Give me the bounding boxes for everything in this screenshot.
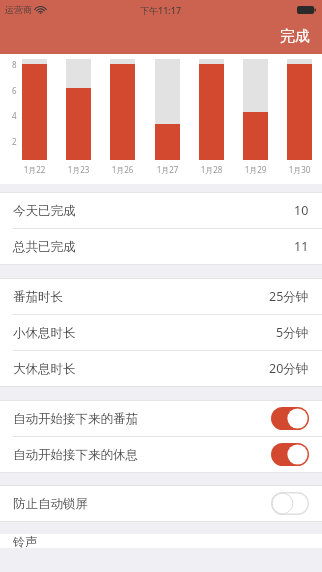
button[interactable]: 大休息时长 [0,351,322,386]
staticText: 防止自动锁屏 [13,496,88,512]
button[interactable]: 总共已完成 [0,229,322,264]
staticText: 4 [12,110,17,121]
staticText: 自动开始接下来的休息 [13,447,138,463]
staticText: 1月28日 [199,164,224,175]
button[interactable]: 防止自动锁屏 [0,486,322,521]
staticText: 总共已完成 [13,239,76,255]
staticText: 完成 [280,27,310,46]
staticText: 8 [12,59,17,70]
staticText: 20分钟 [269,360,309,377]
staticText: 1月26日 [110,164,135,175]
button[interactable]: 完成 [268,22,322,51]
staticText: 1月22日 [22,164,47,175]
staticText: 2 [12,136,17,147]
staticText: 铃声 [13,534,37,548]
button[interactable]: Switch on [271,407,309,430]
staticText: 25分钟 [269,288,309,305]
button[interactable]: 自动开始接下来的番茄 [0,401,322,436]
staticText: 运营商 [5,4,32,15]
staticText: 今天已完成 [13,203,76,219]
button[interactable]: 今天已完成 [0,193,322,228]
button[interactable]: 自动开始接下来的休息 [0,437,322,472]
staticText: 1月29日 [243,164,268,175]
staticText: 5分钟 [276,324,309,341]
staticText: 下午11:17 [140,4,182,16]
button[interactable]: Switch on [271,443,309,466]
staticText: 大休息时长 [13,361,76,377]
button[interactable]: 番茄时长 [0,279,322,314]
staticText: 6 [12,85,17,96]
staticText: 小休息时长 [13,325,76,341]
staticText: 番茄时长 [13,289,63,305]
staticText: 1月27日 [155,164,180,175]
staticText: 1月30日 [287,164,312,175]
staticText: 10 [294,202,309,219]
button[interactable]: 铃声 [0,534,322,548]
staticText: 11 [294,238,309,255]
button[interactable]: Switch off [271,492,309,515]
staticText: 自动开始接下来的番茄 [13,411,138,427]
staticText: 1月23日 [66,164,91,175]
button[interactable]: 小休息时长 [0,315,322,350]
